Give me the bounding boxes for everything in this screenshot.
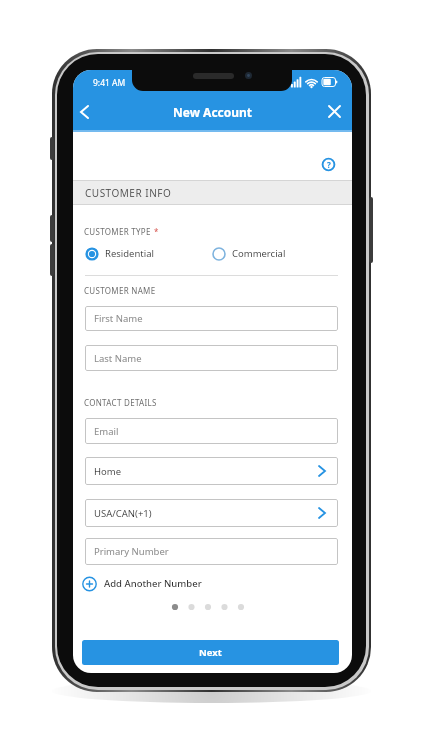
button[interactable]: USA/CAN(+1) xyxy=(85,499,338,527)
staticText: CUSTOMER INFO xyxy=(85,186,172,200)
button[interactable]: Next xyxy=(82,640,339,665)
staticText: Next xyxy=(199,646,222,659)
staticText: Add Another Number xyxy=(104,577,202,590)
staticText: Home xyxy=(94,465,122,478)
staticText: ? xyxy=(327,159,331,170)
button[interactable]: Last Name xyxy=(85,345,338,371)
button[interactable]: Primary Number xyxy=(85,538,338,565)
button[interactable]: Residential xyxy=(85,246,155,260)
staticText: 9:41 AM xyxy=(93,77,126,89)
button[interactable]: ? xyxy=(320,156,337,173)
button[interactable] xyxy=(322,100,348,124)
staticText: CONTACT DETAILS xyxy=(84,397,157,408)
staticText: Last Name xyxy=(94,352,142,365)
button[interactable]: First Name xyxy=(85,306,338,331)
staticText: * xyxy=(154,226,159,237)
button[interactable]: Email xyxy=(85,418,338,444)
staticText: Residential xyxy=(105,247,155,260)
staticText: Commercial xyxy=(232,247,286,260)
button[interactable]: Home xyxy=(85,457,338,485)
staticText: Primary Number xyxy=(94,545,169,558)
button[interactable]: Commercial xyxy=(212,246,286,260)
staticText: CUSTOMER TYPE xyxy=(84,226,154,237)
button[interactable] xyxy=(73,100,99,124)
staticText: USA/CAN(+1) xyxy=(94,507,152,520)
staticText: Email xyxy=(94,425,119,438)
staticText: First Name xyxy=(94,312,143,325)
button[interactable]: Add Another Number xyxy=(82,575,202,591)
staticText: CUSTOMER NAME xyxy=(84,285,156,296)
staticText: New Account xyxy=(173,104,253,120)
